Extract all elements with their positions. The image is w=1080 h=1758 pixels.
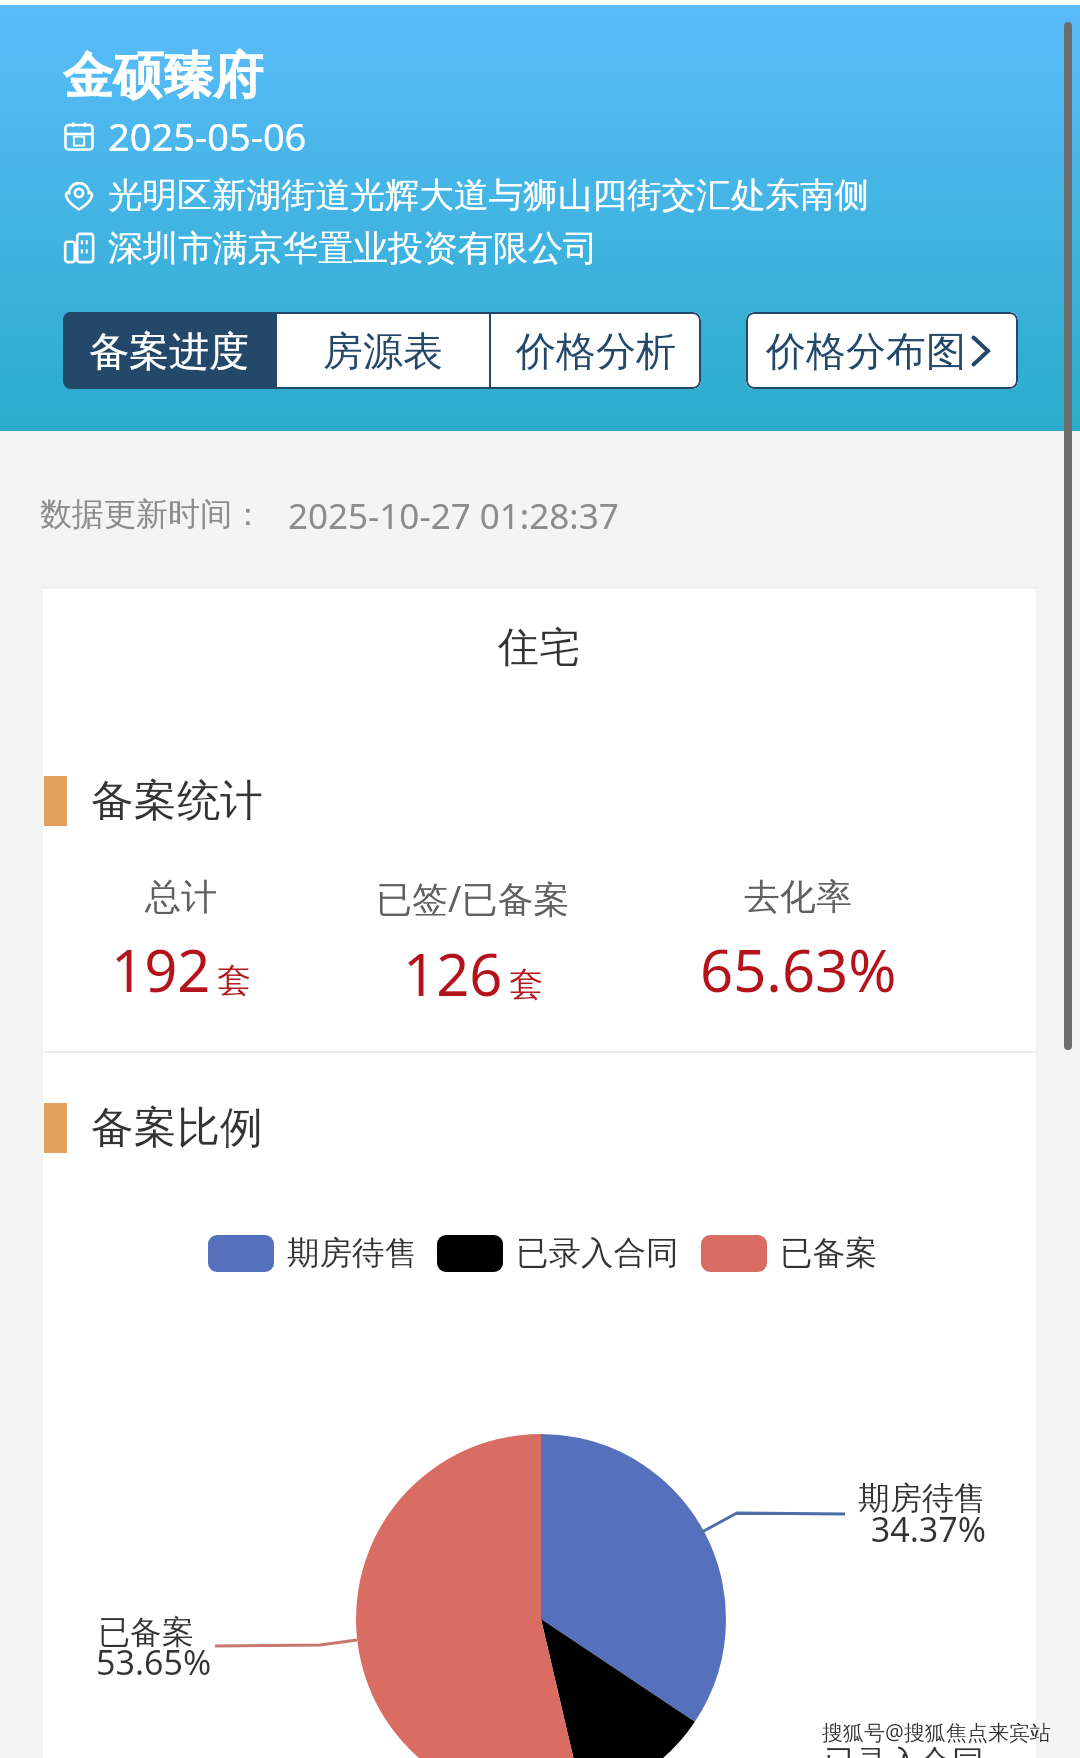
staticText: 金硕臻府	[63, 45, 263, 108]
staticText: 去化率	[744, 874, 852, 919]
staticText: 数据更新时间：	[40, 494, 264, 534]
other: Opening date	[64, 121, 94, 151]
staticText: 2025-05-06	[108, 110, 307, 162]
button[interactable]: 已录入合同	[437, 1233, 679, 1274]
other: Filing ratio pie chart	[0, 0, 1080, 1758]
staticText: 套	[217, 959, 251, 1002]
staticText: 53.65%	[96, 1639, 212, 1685]
button[interactable]: 房源表	[277, 312, 489, 389]
button[interactable]	[43, 589, 1036, 1758]
staticText: 192	[111, 930, 211, 1009]
staticText: 光明区新湖街道光辉大道与狮山四街交汇处东南侧	[108, 174, 870, 218]
staticText: 价格分布图	[766, 326, 966, 376]
staticText: 价格分析	[516, 326, 676, 376]
button[interactable]: 总计	[0, 874, 381, 1009]
staticText: 34.37%	[700, 1506, 986, 1552]
button[interactable]: 已备案	[701, 1233, 878, 1274]
staticText: 搜狐号@搜狐焦点来宾站	[822, 1718, 1051, 1747]
other: Location	[64, 181, 94, 211]
button[interactable]: 已签/已备案	[273, 874, 673, 1013]
button[interactable]: 去化率	[598, 874, 998, 1009]
button[interactable]: 期房待售	[208, 1233, 417, 1274]
other: Developer	[64, 233, 94, 263]
button[interactable]: 备案进度	[63, 312, 275, 389]
staticText: 已签/已备案	[376, 874, 570, 923]
button[interactable]: 备案统计	[44, 774, 263, 828]
staticText: 2025-10-27 01:28:37	[288, 492, 619, 540]
button[interactable]: 价格分布图	[746, 312, 1018, 389]
staticText: 126	[403, 934, 503, 1013]
staticText: 已备案	[98, 1612, 194, 1652]
staticText: 备案进度	[89, 326, 249, 376]
staticText: 备案比例	[91, 1101, 263, 1155]
staticText: 总计	[145, 874, 217, 919]
button[interactable]: 价格分析	[491, 312, 701, 389]
staticText: 住宅	[42, 622, 1036, 674]
button[interactable]: 备案比例	[44, 1101, 263, 1155]
staticText: 套	[509, 963, 543, 1006]
staticText: 已录入合同	[516, 1233, 679, 1274]
staticText: 深圳市满京华置业投资有限公司	[108, 226, 598, 270]
staticText: 期房待售	[287, 1233, 417, 1274]
staticText: 已录入合同	[824, 1742, 984, 1758]
staticText: 已备案	[780, 1233, 878, 1274]
staticText: 备案统计	[91, 774, 263, 828]
staticText: 期房待售	[700, 1478, 986, 1518]
staticText: 房源表	[323, 326, 443, 376]
staticText: 65.63%	[700, 930, 897, 1009]
